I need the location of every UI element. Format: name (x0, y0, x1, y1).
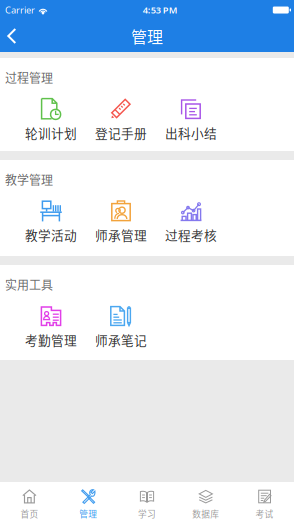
staticText: 管理 (131, 24, 163, 48)
staticText: 考勤管理 (25, 331, 77, 349)
staticText: 考试 (256, 507, 274, 520)
button[interactable]: 师承笔记 (86, 304, 156, 349)
button[interactable]: 过程考核 (156, 199, 226, 244)
staticText: 轮训计划 (25, 124, 77, 142)
staticText: 数据库 (192, 507, 219, 520)
button[interactable]: 登记手册 (86, 97, 156, 142)
staticText: 出科小结 (165, 124, 217, 142)
staticText: Carrier (5, 4, 35, 16)
button[interactable]: 出科小结 (156, 97, 226, 142)
staticText: 师承管理 (95, 226, 147, 244)
staticText: 学习 (138, 507, 156, 520)
staticText: 4:53 PM (143, 4, 178, 16)
button[interactable]: 管理 (59, 482, 118, 522)
staticText: 师承笔记 (95, 331, 147, 349)
button[interactable]: 轮训计划 (16, 97, 86, 142)
button[interactable]: 学习 (118, 482, 176, 522)
staticText: 登记手册 (95, 124, 147, 142)
staticText: 教学管理 (5, 171, 53, 188)
button[interactable]: 师承管理 (86, 199, 156, 244)
staticText: 过程考核 (165, 226, 217, 244)
staticText: 管理 (79, 507, 97, 520)
staticText: 实用工具 (5, 276, 53, 293)
button[interactable]: 考试 (235, 482, 294, 522)
button[interactable]: 数据库 (176, 482, 235, 522)
staticText: 首页 (20, 507, 38, 520)
staticText: 教学活动 (25, 226, 77, 244)
button[interactable]: 考勤管理 (16, 304, 86, 349)
button[interactable]: 教学活动 (16, 199, 86, 244)
staticText: 过程管理 (5, 69, 53, 86)
button[interactable]: Back (0, 20, 29, 52)
button[interactable]: 首页 (0, 482, 59, 522)
